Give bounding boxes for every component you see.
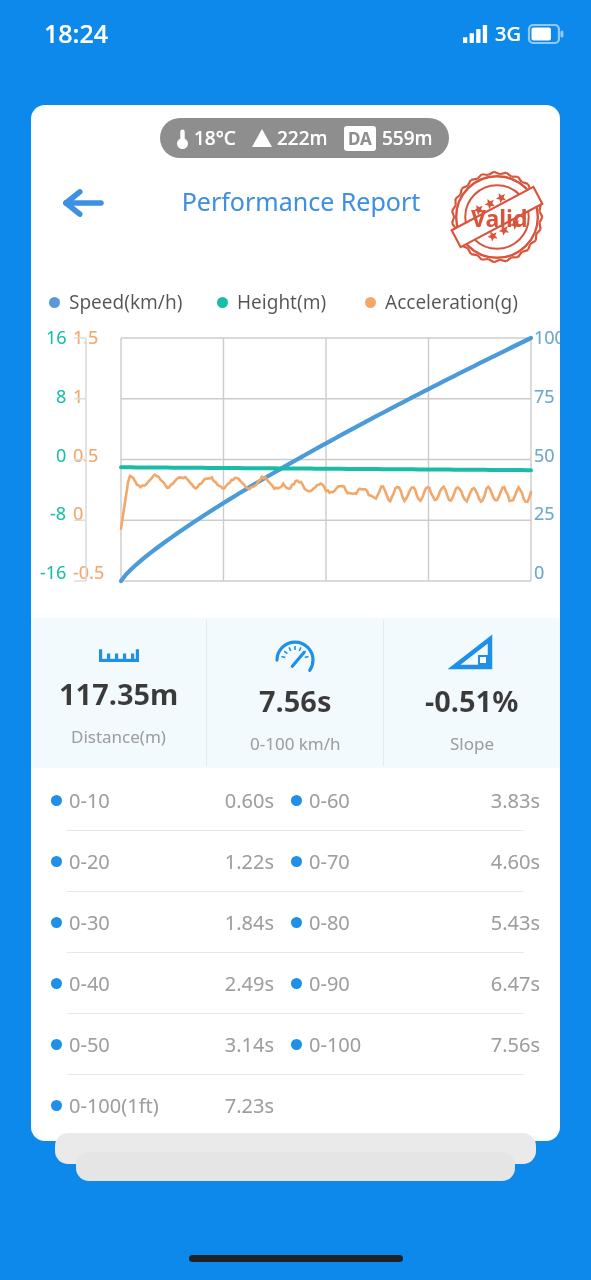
staticText: Performance Report xyxy=(181,184,421,218)
staticText: Distance(m) xyxy=(71,725,166,748)
staticText: 0-70 xyxy=(309,848,490,875)
staticText: 0 xyxy=(534,560,545,585)
button[interactable]: Speed(km/h) xyxy=(49,289,183,315)
staticText: Speed(km/h) xyxy=(69,289,183,315)
staticText: 25 xyxy=(534,501,555,526)
staticText: 0-30 xyxy=(69,909,179,936)
staticText: 0 xyxy=(56,443,67,468)
staticText: 6.47s xyxy=(490,970,540,997)
button[interactable]: 0-30 xyxy=(31,892,560,952)
button[interactable]: Acceleration(g) xyxy=(365,289,518,315)
staticText: 3.14s xyxy=(179,1031,274,1058)
button[interactable]: 0-10 xyxy=(31,770,560,830)
button[interactable]: 7.56s xyxy=(207,618,383,768)
button[interactable]: 0-40 xyxy=(31,953,560,1013)
staticText: 1.84s xyxy=(179,909,274,936)
staticText: 0.5 xyxy=(73,443,99,468)
staticText: 8 xyxy=(56,384,67,409)
button[interactable]: 0-50 xyxy=(31,1014,560,1074)
button[interactable]: -0.51% xyxy=(384,618,560,768)
staticText: 0-100(1ft) xyxy=(69,1092,179,1119)
staticText: -0.51% xyxy=(425,681,519,720)
button[interactable]: 0-100(1ft) xyxy=(31,1075,560,1135)
staticText: 3.83s xyxy=(490,787,540,814)
staticText: 0-80 xyxy=(309,909,490,936)
staticText: -8 xyxy=(50,501,67,526)
staticText: 1.22s xyxy=(179,848,274,875)
other: Valid stamp xyxy=(443,163,551,271)
staticText: 3G xyxy=(495,20,521,47)
staticText: 18°C xyxy=(194,125,236,151)
staticText: 0-40 xyxy=(69,970,179,997)
staticText: 0-10 xyxy=(69,787,179,814)
staticText: 222m xyxy=(277,125,328,151)
button[interactable]: Height(m) xyxy=(217,289,327,315)
staticText: 559m xyxy=(382,125,433,151)
button[interactable]: 0-20 xyxy=(31,831,560,891)
staticText: 0-90 xyxy=(309,970,490,997)
staticText: 2.49s xyxy=(179,970,274,997)
button[interactable]: Back xyxy=(55,175,111,231)
staticText: Valid xyxy=(471,202,528,233)
staticText: 1 xyxy=(73,384,84,409)
staticText: 117.35m xyxy=(59,674,179,713)
staticText: 100 xyxy=(534,325,560,350)
staticText: Height(m) xyxy=(237,289,327,315)
staticText: 0-60 xyxy=(309,787,490,814)
staticText: 50 xyxy=(534,443,555,468)
staticText: 0-20 xyxy=(69,848,179,875)
staticText: 0-100 km/h xyxy=(250,732,341,755)
staticText: 18:24 xyxy=(44,16,109,50)
staticText: 0.60s xyxy=(179,787,274,814)
staticText: 75 xyxy=(534,384,555,409)
staticText: DA xyxy=(348,127,372,150)
staticText: 0-50 xyxy=(69,1031,179,1058)
staticText: -0.5 xyxy=(73,560,105,585)
staticText: 0 xyxy=(73,501,84,526)
staticText: 16 xyxy=(46,325,67,350)
button[interactable]: 18°C xyxy=(160,118,449,158)
staticText: Slope xyxy=(450,732,495,755)
staticText: 5.43s xyxy=(490,909,540,936)
staticText: -16 xyxy=(40,560,67,585)
staticText: 0-100 xyxy=(309,1031,490,1058)
staticText: 7.23s xyxy=(179,1092,274,1119)
staticText: Acceleration(g) xyxy=(385,289,518,315)
button[interactable]: 117.35m xyxy=(31,618,206,768)
staticText: 4.60s xyxy=(490,848,540,875)
staticText: 1.5 xyxy=(73,325,99,350)
staticText: 7.56s xyxy=(490,1031,540,1058)
staticText: 7.56s xyxy=(259,681,332,720)
